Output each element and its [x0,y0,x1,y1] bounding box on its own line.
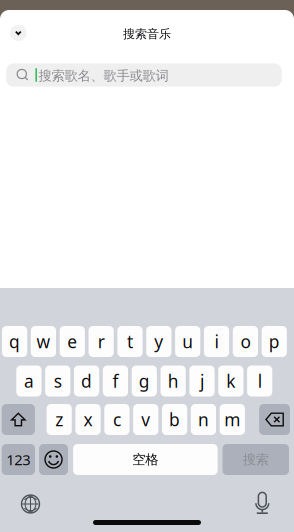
button[interactable]: m [220,404,245,435]
staticText: j [200,369,204,392]
button[interactable]: u [175,326,200,357]
button[interactable]: Emoji [39,444,68,475]
button[interactable]: b [162,404,187,435]
button[interactable]: c [104,404,129,435]
button[interactable]: z [47,404,72,435]
button[interactable]: p [262,326,287,357]
staticText: l [258,369,262,392]
staticText: 空格 [132,451,158,468]
staticText: n [198,408,209,431]
staticText: s [54,369,62,392]
button[interactable]: x [75,404,101,435]
staticText: i [215,330,219,353]
button[interactable]: i [204,326,229,357]
staticText: q [9,330,20,353]
button[interactable]: Delete [259,404,290,435]
staticText: 搜索 [243,451,269,468]
button[interactable]: 123 [2,444,35,475]
staticText: m [224,408,240,431]
button[interactable]: f [103,365,128,396]
button[interactable]: l [247,365,272,396]
button[interactable]: a [16,365,41,396]
button[interactable]: n [191,404,216,435]
staticText: o [240,330,250,353]
staticText: z [55,408,63,431]
staticText: k [226,369,235,392]
button[interactable]: s [45,365,70,396]
staticText: g [139,369,150,392]
staticText: f [112,369,118,392]
button[interactable]: e [60,326,85,357]
staticText: w [36,330,50,353]
staticText: v [141,408,150,431]
staticText: e [67,330,77,353]
staticText: b [169,408,180,431]
button[interactable]: k [218,365,243,396]
staticText: d [81,369,92,392]
button[interactable]: g [132,365,157,396]
staticText: 搜索歌名、歌手或歌词 [38,68,168,84]
staticText: t [127,330,133,353]
button[interactable]: t [117,326,143,357]
button[interactable]: Close [5,20,31,46]
button[interactable]: w [31,326,56,357]
button[interactable]: h [161,365,186,396]
button[interactable]: r [89,326,114,357]
button[interactable]: o [233,326,258,357]
staticText: y [154,330,163,353]
button[interactable]: q [2,326,27,357]
button[interactable]: 搜索 [222,444,289,475]
button[interactable]: 空格 [73,444,218,475]
staticText: a [24,369,34,392]
staticText: c [113,408,121,431]
staticText: r [98,330,105,353]
button[interactable]: Next keyboard [15,489,45,519]
button[interactable]: Dictation [247,488,277,518]
staticText: 123 [6,450,30,469]
staticText: h [168,369,179,392]
button[interactable]: v [133,404,158,435]
staticText: 搜索音乐 [123,27,171,41]
staticText: x [83,408,92,431]
staticText: p [269,330,280,353]
button[interactable]: Shift [2,404,35,435]
button[interactable]: y [146,326,171,357]
staticText: u [182,330,193,353]
button[interactable]: j [189,365,215,396]
button[interactable]: d [74,365,99,396]
